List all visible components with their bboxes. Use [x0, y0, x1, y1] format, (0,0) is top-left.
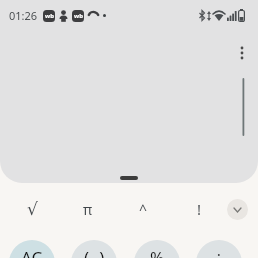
staticText: wb: [74, 12, 83, 20]
staticText: ( ): [84, 246, 105, 258]
staticText: AC: [21, 246, 43, 258]
staticText: %: [150, 246, 165, 258]
button[interactable]: [227, 199, 248, 220]
button[interactable]: √: [5, 194, 60, 224]
button[interactable]: ^: [115, 194, 171, 224]
button[interactable]: !: [171, 194, 227, 224]
button[interactable]: %: [134, 240, 180, 258]
button[interactable]: ( ): [71, 240, 117, 258]
staticText: √: [27, 199, 38, 219]
button[interactable]: π: [60, 194, 115, 224]
button[interactable]: [120, 176, 138, 180]
staticText: wb: [45, 12, 54, 20]
staticText: ÷: [214, 246, 224, 258]
staticText: π: [83, 200, 93, 219]
staticText: !: [197, 199, 202, 219]
staticText: ^: [139, 200, 148, 219]
button[interactable]: [234, 44, 250, 66]
button[interactable]: ÷: [196, 240, 242, 258]
staticText: 01:26: [9, 8, 38, 23]
button[interactable]: AC: [9, 240, 55, 258]
